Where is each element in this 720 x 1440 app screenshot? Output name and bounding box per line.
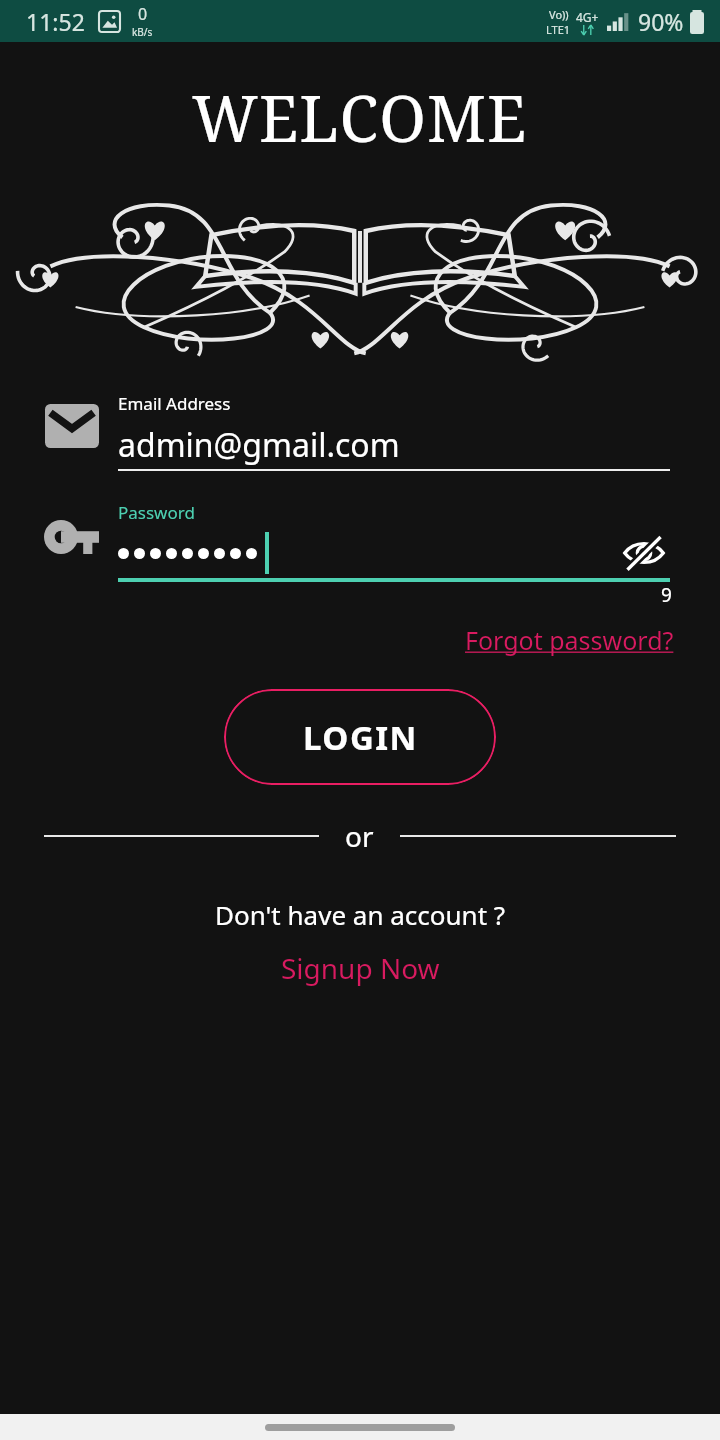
staticText: LOGIN: [303, 715, 418, 760]
staticText: kB/s: [132, 25, 153, 39]
button[interactable]: Email Address: [44, 381, 670, 471]
staticText: 4G+: [576, 9, 599, 25]
staticText: Signup Now: [281, 949, 440, 987]
staticText: Email Address: [118, 392, 231, 415]
button[interactable]: Forgot password?: [463, 621, 676, 659]
staticText: Password: [118, 501, 195, 524]
staticText: admin@gmail.com: [118, 423, 400, 465]
button[interactable]: Signup Now: [275, 946, 446, 990]
staticText: WELCOME: [192, 75, 528, 161]
button[interactable]: LOGIN: [224, 689, 496, 785]
button[interactable]: Toggle password visibility: [618, 532, 670, 574]
staticText: Don't have an account ?: [215, 897, 506, 932]
staticText: 0: [138, 3, 148, 25]
button[interactable]: Password: [44, 492, 670, 582]
staticText: or: [345, 817, 374, 855]
staticText: LTE1: [546, 22, 571, 37]
staticText: 9: [661, 582, 672, 608]
staticText: 90%: [638, 6, 684, 37]
staticText: Forgot password?: [465, 623, 674, 657]
staticText: Vo)): [549, 7, 569, 22]
staticText: 11:52: [26, 6, 85, 37]
